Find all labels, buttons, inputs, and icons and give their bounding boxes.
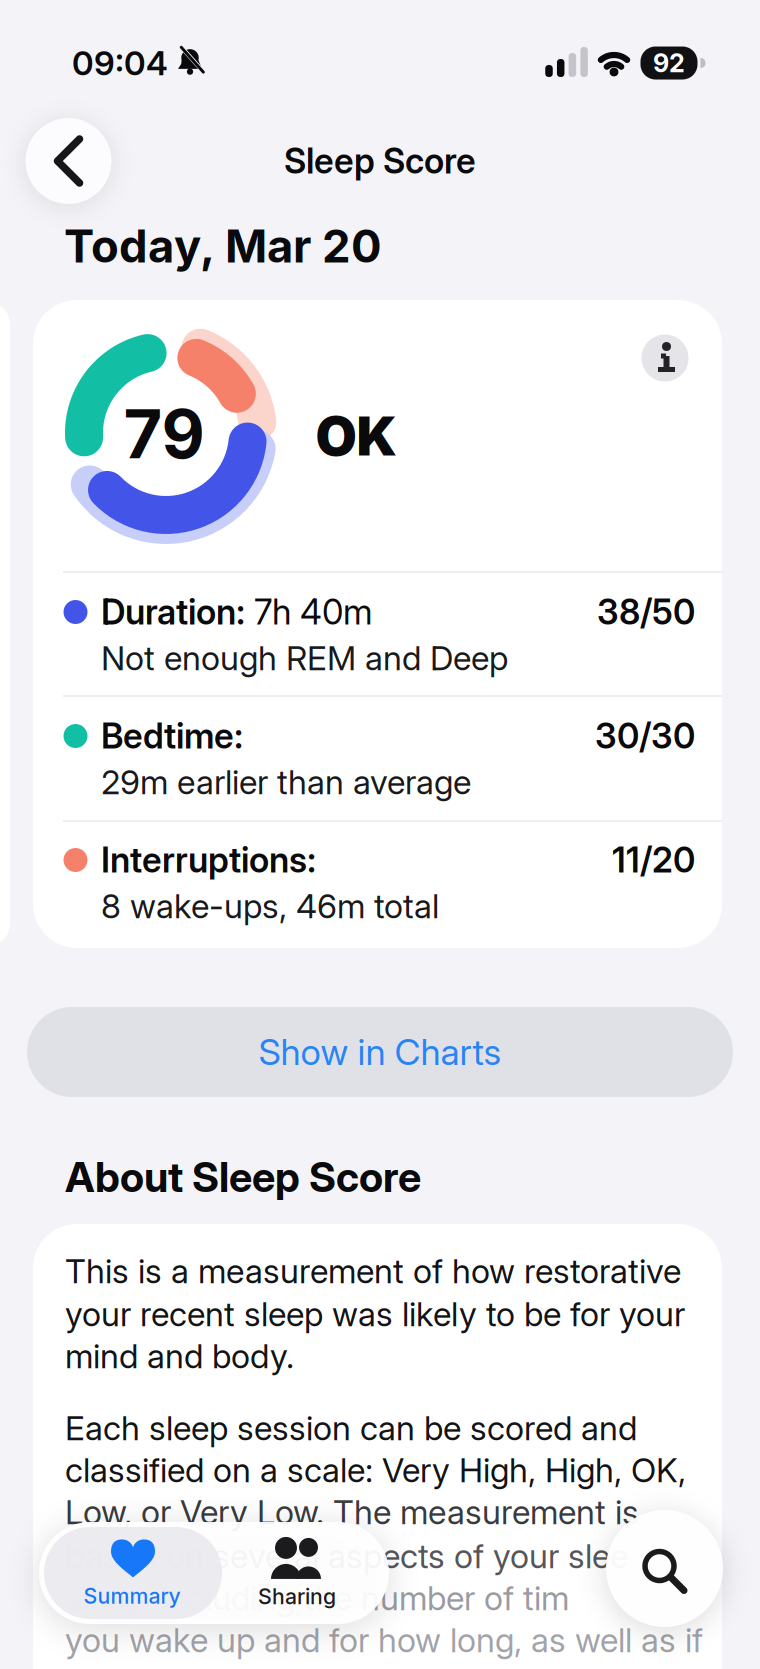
staticText: classified on a scale: Very High, High, … xyxy=(65,1450,686,1490)
staticText: mind and body. xyxy=(65,1336,294,1376)
button[interactable]: Show in Charts xyxy=(27,1007,733,1097)
button[interactable]: About Sleep Score xyxy=(641,334,688,381)
staticText: based on several aspects of your slee xyxy=(65,1536,628,1576)
staticText: Sleep Score xyxy=(284,141,476,181)
staticText: Summary xyxy=(83,1583,180,1609)
staticText: 29m earlier than average xyxy=(101,762,471,802)
staticText: sleep, including the number of tim xyxy=(65,1578,569,1618)
staticText: About Sleep Score xyxy=(65,1153,421,1201)
staticText: you wake up and for how long, as well as… xyxy=(65,1620,703,1660)
button[interactable]: Search xyxy=(606,1510,723,1627)
button[interactable]: Back xyxy=(25,118,111,204)
staticText: 38/50 xyxy=(597,592,695,632)
staticText: This is a measurement of how restorative xyxy=(65,1251,681,1291)
staticText: Each sleep session can be scored and xyxy=(65,1408,637,1448)
staticText: 79 xyxy=(123,395,204,473)
staticText: Bedtime: xyxy=(101,716,243,756)
button[interactable]: Summary xyxy=(43,1526,221,1622)
staticText: OK xyxy=(315,404,396,467)
staticText: Interruptions: xyxy=(101,840,316,880)
staticText: Today, Mar 20 xyxy=(64,219,382,273)
staticText: Sharing xyxy=(258,1584,336,1609)
staticText: Duration: 7h 40m xyxy=(101,592,373,632)
staticText: 92 xyxy=(653,48,685,78)
staticText: 8 wake-ups, 46m total xyxy=(101,886,439,926)
staticText: 09:04 xyxy=(72,43,168,83)
staticText: your recent sleep was likely to be for y… xyxy=(65,1294,685,1334)
staticText: 30/30 xyxy=(595,716,695,756)
staticText: Show in Charts xyxy=(258,1031,501,1073)
staticText: 11/20 xyxy=(612,840,695,880)
button[interactable]: Sharing xyxy=(217,1525,377,1621)
staticText: Low, or Very Low. The measurement is xyxy=(65,1492,639,1532)
staticText: Not enough REM and Deep xyxy=(101,638,508,678)
